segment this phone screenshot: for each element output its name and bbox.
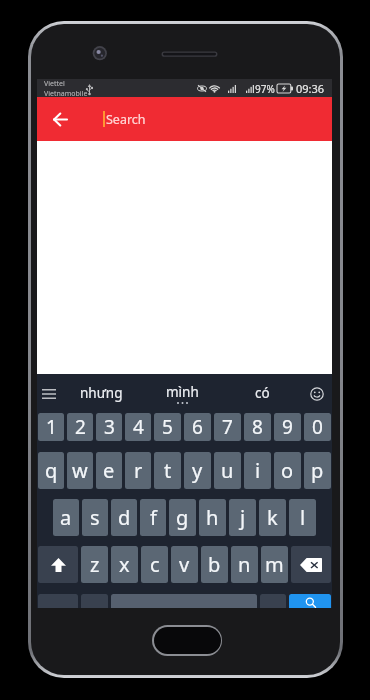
button[interactable]: 3: [96, 413, 122, 441]
button[interactable]: e: [96, 452, 122, 489]
button[interactable]: l: [289, 499, 316, 536]
button[interactable]: c: [141, 546, 168, 583]
button[interactable]: có: [222, 374, 302, 413]
staticText: y: [192, 457, 203, 484]
staticText: g: [176, 504, 189, 531]
staticText: d: [118, 504, 131, 531]
button[interactable]: d: [111, 499, 137, 536]
button[interactable]: t: [154, 452, 181, 489]
button[interactable]: x: [111, 546, 138, 583]
staticText: v: [179, 551, 190, 578]
staticText: s: [90, 504, 100, 531]
staticText: a: [60, 504, 72, 531]
button[interactable]: p: [304, 452, 331, 489]
staticText: w: [72, 457, 88, 484]
button[interactable]: Keyboard menu: [37, 374, 61, 413]
button[interactable]: v: [171, 546, 198, 583]
button[interactable]: m: [261, 546, 288, 583]
button[interactable]: f: [140, 499, 166, 536]
button[interactable]: i: [244, 452, 271, 489]
staticText: t: [164, 457, 172, 484]
button[interactable]: b: [201, 546, 228, 583]
button[interactable]: 2: [67, 413, 93, 441]
staticText: 3: [104, 414, 115, 440]
button[interactable]: 5: [154, 413, 181, 441]
button[interactable]: h: [199, 499, 226, 536]
button[interactable]: w: [67, 452, 93, 489]
staticText: r: [134, 457, 143, 484]
button[interactable]: g: [169, 499, 196, 536]
staticText: o: [281, 457, 294, 484]
staticText: 5: [162, 414, 173, 440]
staticText: j: [240, 504, 246, 531]
staticText: Vietnamobile: [44, 89, 88, 97]
staticText: f: [150, 504, 157, 531]
staticText: Search: [106, 111, 146, 128]
staticText: l: [300, 504, 306, 531]
staticText: 4: [133, 414, 144, 440]
staticText: b: [208, 551, 221, 578]
button[interactable]: a: [53, 499, 79, 536]
staticText: p: [311, 457, 324, 484]
button[interactable]: o: [274, 452, 301, 489]
button[interactable]: 0: [304, 413, 331, 441]
staticText: e: [103, 457, 115, 484]
button[interactable]: k: [259, 499, 286, 536]
staticText: 8: [252, 414, 263, 440]
staticText: m: [265, 551, 284, 578]
button[interactable]: 8: [244, 413, 271, 441]
staticText: 0: [312, 414, 323, 440]
button[interactable]: j: [229, 499, 256, 536]
button[interactable]: s: [82, 499, 108, 536]
staticText: 6: [192, 414, 203, 440]
staticText: mình: [166, 383, 199, 401]
button[interactable]: 4: [125, 413, 151, 441]
button[interactable]: Home: [152, 625, 222, 656]
staticText: Viettel: [44, 79, 65, 89]
staticText: h: [206, 504, 219, 531]
button[interactable]: Emoji: [302, 374, 332, 413]
staticText: q: [45, 457, 58, 484]
button[interactable]: Shift: [38, 546, 78, 583]
staticText: n: [238, 551, 251, 578]
button[interactable]: z: [81, 546, 108, 583]
button[interactable]: n: [231, 546, 258, 583]
staticText: z: [90, 551, 100, 578]
button[interactable]: y: [184, 452, 211, 489]
staticText: u: [221, 457, 234, 484]
staticText: k: [267, 504, 278, 531]
button[interactable]: q: [38, 452, 64, 489]
button[interactable]: Search: [289, 594, 331, 608]
staticText: 2: [75, 414, 86, 440]
button[interactable]: 6: [184, 413, 211, 441]
staticText: 97%: [255, 82, 275, 96]
button[interactable]: nhưng: [61, 374, 142, 413]
staticText: 9: [282, 414, 293, 440]
button[interactable]: mình: [142, 374, 222, 413]
staticText: 1: [46, 414, 57, 440]
button[interactable]: Back: [38, 97, 82, 141]
button[interactable]: 9: [274, 413, 301, 441]
staticText: có: [255, 384, 270, 402]
staticText: 7: [222, 414, 233, 440]
button[interactable]: Backspace: [291, 546, 331, 583]
staticText: c: [150, 551, 160, 578]
button[interactable]: u: [214, 452, 241, 489]
button[interactable]: r: [125, 452, 151, 489]
staticText: i: [255, 457, 261, 484]
button[interactable]: 1: [38, 413, 64, 441]
staticText: 09:36: [296, 81, 325, 96]
staticText: nhưng: [80, 384, 123, 402]
button[interactable]: 7: [214, 413, 241, 441]
staticText: x: [119, 551, 130, 578]
